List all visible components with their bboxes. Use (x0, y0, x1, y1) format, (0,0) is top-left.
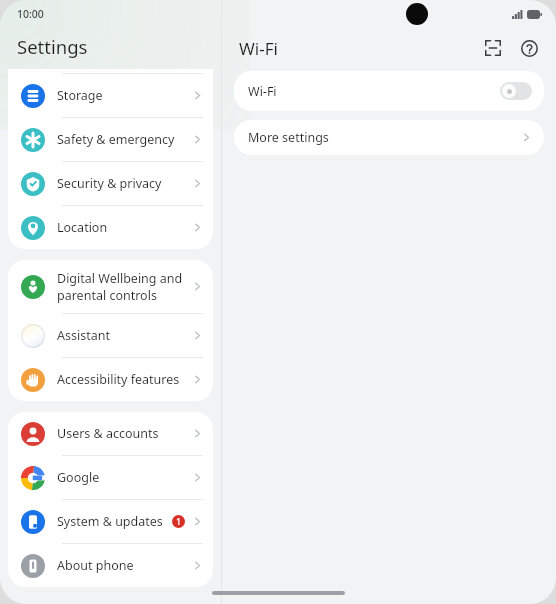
staticText: About phone (57, 557, 192, 574)
button[interactable]: Security & privacy (8, 162, 213, 205)
staticText: System & updates (57, 513, 172, 530)
staticText: Location (57, 219, 192, 236)
staticText: Accessibility features (57, 371, 192, 388)
button[interactable]: Wi-Fi toggle (500, 82, 532, 100)
button[interactable]: More settings (234, 120, 544, 155)
staticText: 10:00 (17, 7, 44, 21)
staticText: Storage (57, 87, 192, 104)
button[interactable]: Users & accounts (8, 412, 213, 455)
button[interactable]: Wi-Fi (234, 71, 544, 111)
staticText: More settings (248, 129, 329, 146)
staticText: Google (57, 469, 192, 486)
staticText: Wi-Fi (248, 83, 277, 100)
staticText: Digital Wellbeing and parental controls (57, 270, 192, 303)
button[interactable]: Location (8, 206, 213, 249)
button[interactable]: Accessibility features (8, 358, 213, 401)
staticText: Safety & emergency (57, 131, 192, 148)
button[interactable]: Digital Wellbeing and parental controls (8, 260, 213, 313)
button[interactable]: Safety & emergency (8, 118, 213, 161)
staticText: Assistant (57, 327, 192, 344)
button[interactable]: About phone (8, 544, 213, 587)
button[interactable]: Assistant (8, 314, 213, 357)
button[interactable]: Storage (8, 74, 213, 117)
button[interactable]: Help (512, 31, 546, 65)
button[interactable]: System & updates (8, 500, 213, 543)
staticText: Settings (17, 34, 88, 59)
staticText: Wi-Fi (239, 37, 278, 60)
button[interactable]: Google (8, 456, 213, 499)
button[interactable]: Scan QR code (476, 31, 510, 65)
staticText: 1 (176, 516, 181, 527)
staticText: Security & privacy (57, 175, 192, 192)
staticText: Users & accounts (57, 425, 192, 442)
